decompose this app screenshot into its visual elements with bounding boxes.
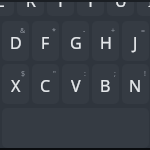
staticText: *: [52, 26, 56, 36]
button[interactable]: R: [17, 0, 44, 16]
staticText: -: [83, 26, 86, 36]
staticText: I: [148, 0, 150, 12]
button[interactable]: B: [92, 64, 119, 104]
button[interactable]: D: [2, 21, 29, 61]
staticText: =: [141, 26, 146, 36]
button[interactable]: U: [107, 0, 134, 16]
button[interactable]: G: [62, 21, 89, 61]
staticText: N: [129, 75, 142, 97]
staticText: G: [70, 32, 82, 54]
staticText: J: [133, 32, 138, 54]
button[interactable]: T: [47, 0, 74, 16]
button[interactable]: N: [122, 64, 149, 104]
staticText: U: [115, 0, 127, 12]
staticText: F: [41, 32, 50, 54]
button[interactable]: Y: [77, 0, 104, 16]
button[interactable]: X: [2, 64, 29, 104]
staticText: V: [71, 75, 81, 97]
button[interactable]: H: [92, 21, 119, 61]
staticText: ;: [114, 69, 116, 79]
staticText: $: [21, 69, 26, 79]
staticText: !: [144, 69, 146, 79]
staticText: +: [111, 26, 116, 36]
staticText: &: [20, 26, 26, 36]
button[interactable]: I: [137, 0, 150, 16]
staticText: R: [26, 0, 36, 12]
button[interactable]: V: [62, 64, 89, 104]
staticText: B: [100, 75, 111, 97]
staticText: :: [84, 69, 86, 79]
staticText: ": [53, 69, 56, 79]
staticText: E: [0, 0, 5, 12]
button[interactable]: C: [32, 64, 59, 104]
staticText: X: [11, 75, 21, 97]
staticText: H: [100, 32, 112, 54]
staticText: D: [10, 32, 22, 54]
staticText: C: [40, 75, 51, 97]
staticText: Y: [86, 0, 96, 12]
button[interactable]: J: [122, 21, 149, 61]
staticText: T: [56, 0, 65, 12]
button[interactable]: F: [32, 21, 59, 61]
button[interactable]: E: [0, 0, 14, 16]
